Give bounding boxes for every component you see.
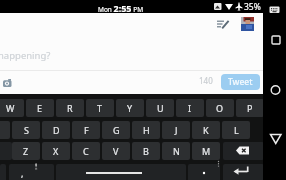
button[interactable]: B (132, 142, 160, 160)
button[interactable] (269, 132, 282, 145)
button[interactable] (241, 17, 254, 31)
button[interactable]: Z (12, 142, 40, 160)
button[interactable]: H (132, 121, 160, 139)
staticText: H (143, 124, 150, 136)
staticText: B (143, 145, 149, 157)
button[interactable] (269, 6, 281, 14)
staticText: W (6, 102, 15, 114)
staticText: M (202, 145, 211, 157)
button[interactable]: C (72, 142, 100, 160)
button[interactable] (9, 164, 54, 180)
staticText: Mon 2:55 PM (98, 2, 144, 14)
staticText: D (53, 124, 60, 136)
staticText: U (157, 102, 164, 114)
staticText: V (113, 145, 119, 157)
button[interactable]: N (162, 142, 190, 160)
button[interactable]: M (192, 142, 220, 160)
staticText: N (173, 145, 180, 157)
staticText: F (84, 124, 89, 136)
staticText: 35% (244, 1, 261, 13)
staticText: S (24, 124, 29, 136)
staticText: I (188, 102, 192, 114)
staticText: Z (23, 145, 29, 157)
button[interactable] (270, 34, 282, 46)
staticText: Tweet (228, 76, 253, 88)
staticText: E (37, 102, 43, 114)
button[interactable]: E (26, 99, 54, 117)
staticText: , (21, 167, 24, 179)
staticText: R (67, 102, 73, 114)
button[interactable]: G (102, 121, 130, 139)
button[interactable] (269, 84, 282, 97)
button[interactable]: S (12, 121, 40, 139)
staticText: K (203, 124, 209, 136)
button[interactable]: P (236, 99, 264, 117)
button[interactable]: Tweet (221, 74, 260, 90)
staticText: happening? (0, 49, 51, 62)
staticText: C (83, 145, 89, 157)
button[interactable]: L (222, 121, 250, 139)
staticText: J (175, 124, 178, 136)
button[interactable] (56, 164, 186, 180)
staticText: G (113, 124, 120, 136)
button[interactable]: V (102, 142, 130, 160)
staticText: L (234, 124, 239, 136)
staticText: Y (127, 102, 133, 114)
staticText: X (53, 145, 59, 157)
button[interactable]: W (0, 99, 24, 117)
button[interactable] (223, 142, 264, 160)
staticText: 140 (199, 75, 213, 86)
button[interactable]: Y (116, 99, 144, 117)
button[interactable] (188, 164, 220, 180)
button[interactable]: J (162, 121, 190, 139)
staticText: T (97, 102, 103, 114)
button[interactable]: I (176, 99, 204, 117)
button[interactable]: D (42, 121, 70, 139)
button[interactable]: R (56, 99, 84, 117)
button[interactable] (223, 164, 264, 180)
button[interactable]: K (192, 121, 220, 139)
staticText: O (216, 102, 224, 114)
button[interactable]: T (86, 99, 114, 117)
staticText: P (247, 102, 253, 114)
button[interactable]: X (42, 142, 70, 160)
button[interactable]: O (206, 99, 234, 117)
button[interactable]: U (146, 99, 174, 117)
button[interactable]: F (72, 121, 100, 139)
